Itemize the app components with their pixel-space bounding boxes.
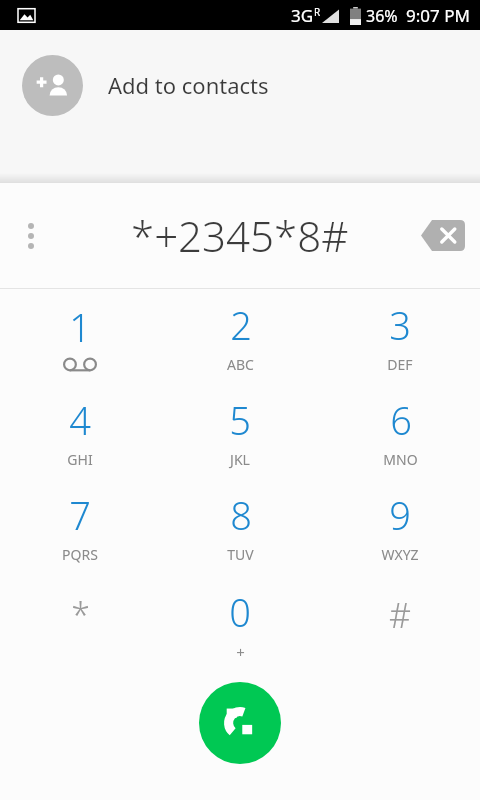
button[interactable]: 1 (0, 289, 160, 384)
staticText: MNO (383, 450, 418, 469)
button[interactable]: Call (199, 682, 281, 764)
staticText: WXYZ (381, 545, 419, 564)
staticText: PQRS (62, 545, 98, 564)
staticText: 8 (230, 489, 252, 541)
staticText: JKL (230, 450, 250, 469)
staticText: * (71, 592, 90, 638)
staticText: 9:07 PM (406, 4, 470, 27)
staticText: DEF (387, 355, 413, 374)
button[interactable]: 3 (320, 289, 480, 384)
staticText: R (314, 5, 321, 19)
staticText: 4 (69, 394, 91, 446)
staticText: GHI (67, 450, 93, 469)
staticText: 5 (229, 394, 251, 446)
button[interactable]: 6 (320, 384, 480, 479)
button[interactable]: # (320, 574, 480, 674)
button[interactable]: 5 (160, 384, 320, 479)
staticText: 3G (291, 4, 314, 27)
staticText: 1 (69, 301, 91, 353)
button[interactable]: 8 (160, 479, 320, 574)
button[interactable]: 2 (160, 289, 320, 384)
button[interactable]: * (0, 574, 160, 674)
button[interactable]: Backspace (405, 183, 480, 288)
button[interactable]: 4 (0, 384, 160, 479)
staticText: # (389, 592, 411, 638)
staticText: 3 (389, 299, 411, 351)
staticText: 2 (230, 299, 252, 351)
staticText: 6 (390, 394, 412, 446)
staticText: TUV (227, 545, 254, 564)
staticText: *+2345*8# (131, 207, 349, 264)
staticText: 7 (69, 489, 91, 541)
staticText: + (236, 642, 245, 662)
button[interactable]: 7 (0, 479, 160, 574)
staticText: ABC (227, 355, 254, 374)
staticText: 9 (389, 489, 411, 541)
button[interactable]: 0 (160, 574, 320, 674)
button[interactable]: 9 (320, 479, 480, 574)
staticText: Add to contacts (108, 70, 269, 100)
button[interactable]: More options (0, 183, 62, 288)
button[interactable]: Add to contacts (0, 30, 480, 140)
staticText: 36% (366, 5, 398, 27)
staticText: 0 (229, 586, 251, 638)
